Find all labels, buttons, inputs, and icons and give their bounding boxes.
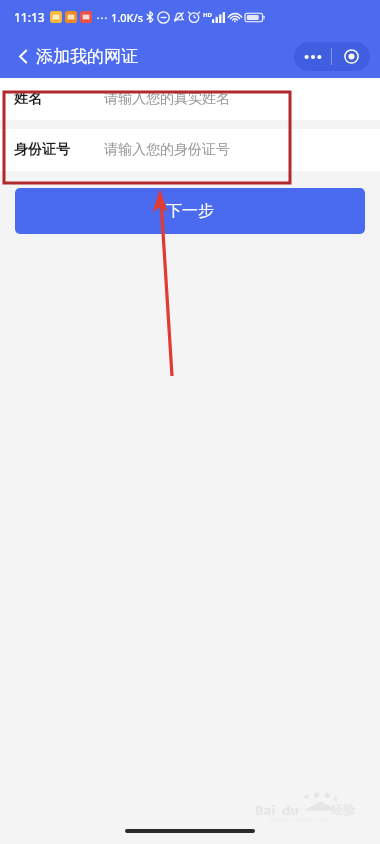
staticText: 经验	[331, 802, 355, 817]
staticText: 下一步	[166, 201, 214, 221]
staticText: 添加我的网证	[36, 46, 138, 67]
staticText: 请输入您的真实姓名	[104, 90, 230, 108]
button[interactable]: 返回	[8, 41, 38, 71]
staticText: 姓名	[14, 90, 104, 108]
button[interactable]: 身份证号	[0, 129, 380, 171]
staticText: 1.0K/s	[111, 10, 144, 25]
staticText: HD	[203, 11, 212, 19]
button[interactable]: 更多	[294, 42, 331, 71]
button[interactable]: 姓名	[0, 78, 380, 120]
staticText: 身份证号	[14, 141, 104, 159]
staticText: 请输入您的身份证号	[104, 141, 230, 159]
button[interactable]: 下一步	[15, 188, 365, 234]
staticText: 11:13	[14, 9, 45, 25]
button[interactable]: 关闭	[332, 42, 370, 71]
staticText: Bai du	[255, 801, 299, 819]
